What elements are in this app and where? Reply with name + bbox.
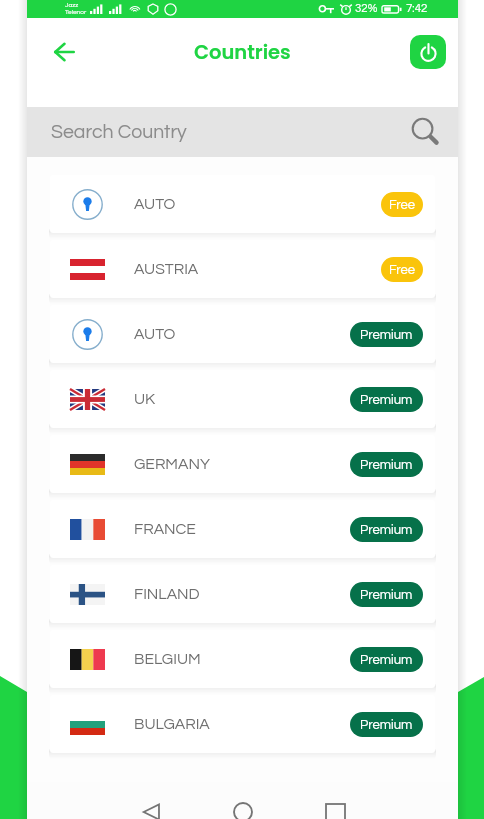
- staticText: Premium: [360, 393, 413, 406]
- button[interactable]: AUSTRIA: [50, 240, 435, 298]
- staticText: Countries: [194, 39, 291, 66]
- button[interactable]: UK: [50, 370, 435, 428]
- staticText: AUSTRIA: [134, 261, 199, 277]
- button[interactable]: Power: [410, 35, 446, 69]
- staticText: Free: [389, 263, 416, 276]
- button[interactable]: GERMANY: [50, 435, 435, 493]
- staticText: 7:42: [406, 3, 428, 15]
- button[interactable]: AUTO: [50, 305, 435, 363]
- button[interactable]: FINLAND: [50, 565, 435, 623]
- button[interactable]: Premium: [350, 517, 423, 542]
- button[interactable]: Search Country: [27, 107, 458, 157]
- button[interactable]: Home: [223, 804, 263, 819]
- staticText: Free: [389, 198, 416, 211]
- staticText: Premium: [360, 588, 413, 601]
- staticText: Premium: [360, 523, 413, 536]
- staticText: BELGIUM: [134, 651, 201, 667]
- staticText: Premium: [360, 328, 413, 341]
- button[interactable]: AUTO: [50, 175, 435, 233]
- button[interactable]: BELGIUM: [50, 630, 435, 688]
- button[interactable]: BULGARIA: [50, 695, 435, 753]
- staticText: UK: [134, 391, 156, 407]
- staticText: Premium: [360, 653, 413, 666]
- staticText: Jazz: [65, 2, 79, 9]
- button[interactable]: Back: [41, 30, 85, 74]
- button[interactable]: Free: [381, 257, 423, 282]
- button[interactable]: Back: [131, 804, 171, 819]
- button[interactable]: FRANCE: [50, 500, 435, 558]
- staticText: AUTO: [134, 196, 176, 212]
- button[interactable]: Recents: [315, 804, 355, 819]
- staticText: Premium: [360, 718, 413, 731]
- staticText: 32%: [355, 3, 378, 15]
- button[interactable]: Free: [381, 192, 423, 217]
- staticText: BULGARIA: [134, 716, 210, 732]
- button[interactable]: Premium: [350, 647, 423, 672]
- staticText: FINLAND: [134, 586, 200, 602]
- staticText: Search Country: [51, 122, 187, 142]
- staticText: GERMANY: [134, 456, 210, 472]
- button[interactable]: Premium: [350, 712, 423, 737]
- button[interactable]: Premium: [350, 582, 423, 607]
- staticText: FRANCE: [134, 521, 196, 537]
- staticText: AUTO: [134, 326, 176, 342]
- button[interactable]: Premium: [350, 322, 423, 347]
- button[interactable]: Premium: [350, 387, 423, 412]
- staticText: Premium: [360, 458, 413, 471]
- button[interactable]: Premium: [350, 452, 423, 477]
- staticText: Telenor: [65, 9, 87, 16]
